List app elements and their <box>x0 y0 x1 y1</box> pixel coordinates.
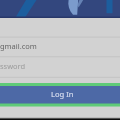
staticText: ssword <box>0 61 26 71</box>
staticText: gmail.com <box>0 41 37 51</box>
button[interactable]: Log In <box>0 86 120 104</box>
staticText: Log In <box>51 89 74 99</box>
button[interactable]: ssword <box>0 57 120 77</box>
button[interactable]: gmail.com <box>0 37 120 56</box>
